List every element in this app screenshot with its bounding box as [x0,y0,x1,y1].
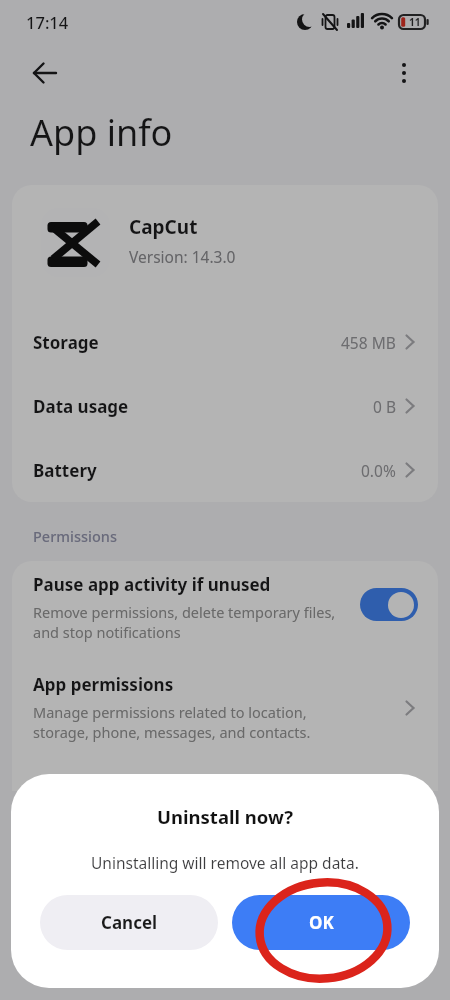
button[interactable] [360,588,418,621]
staticText: Permissions [33,526,117,546]
button[interactable]: Cancel [40,895,218,950]
staticText: 17:14 [26,11,69,33]
staticText: Remove permissions, delete temporary fil… [33,602,336,643]
staticText: Uninstalling will remove all app data. [91,852,359,873]
staticText: CapCut [129,214,198,240]
staticText: App permissions [33,673,174,696]
button[interactable]: Battery [33,438,416,502]
staticText: Data usage [33,395,129,418]
staticText: Version: 14.3.0 [129,246,236,267]
button[interactable]: Pause app activity if unused [33,573,418,643]
staticText: Cancel [101,911,158,934]
staticText: 458 MB [341,332,396,353]
staticText: 0.0% [361,460,396,481]
staticText: 11 [409,15,421,29]
staticText: Storage [33,331,99,354]
staticText: 0 B [373,396,396,417]
button[interactable] [396,65,412,81]
staticText: App info [30,108,173,157]
staticText: OK [309,911,334,934]
staticText: Battery [33,459,97,482]
button[interactable]: App permissions [33,673,416,743]
staticText: Pause app activity if unused [33,573,271,596]
staticText: Manage permissions related to location, … [33,702,311,743]
button[interactable]: OK [232,895,410,950]
button[interactable]: Storage [33,310,416,374]
button[interactable] [32,60,58,86]
staticText: Uninstall now? [157,804,294,829]
button[interactable]: Data usage [33,374,416,438]
